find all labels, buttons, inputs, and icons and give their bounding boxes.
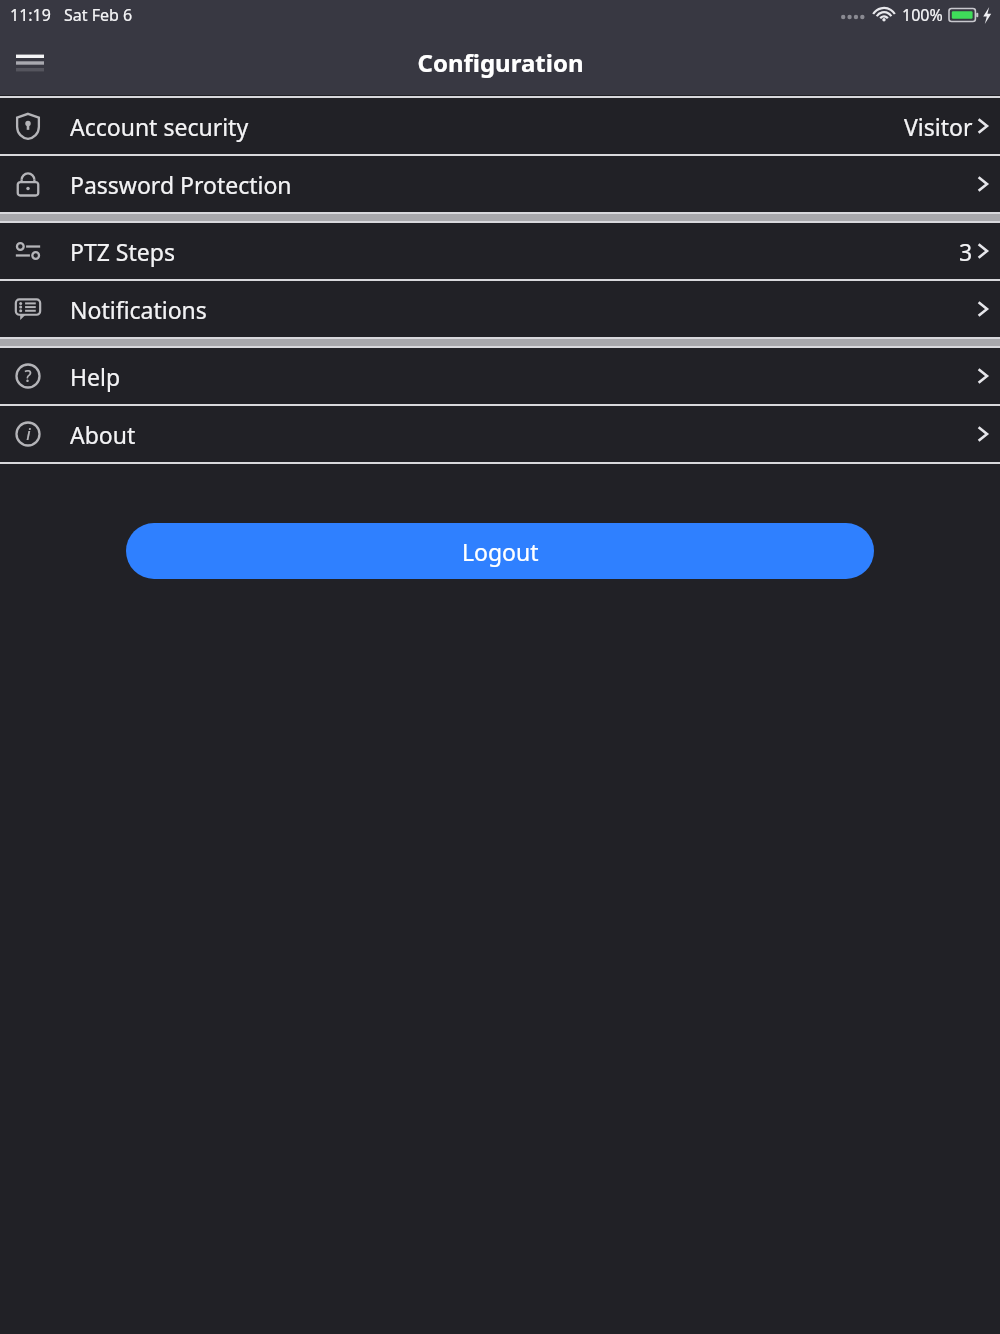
staticText: Configuration	[417, 46, 584, 79]
staticText: Visitor	[904, 111, 973, 142]
staticText: ?	[24, 365, 32, 387]
staticText: i	[26, 423, 31, 445]
button[interactable]: i	[0, 406, 1000, 462]
staticText: Help	[70, 361, 121, 392]
button[interactable]: Menu	[6, 39, 54, 87]
staticText: Notifications	[70, 294, 207, 325]
staticText: Logout	[462, 536, 539, 567]
button[interactable]: Notifications	[0, 281, 1000, 337]
button[interactable]: Logout	[126, 523, 874, 579]
staticText: 3	[959, 236, 973, 267]
staticText: Sat Feb 6	[64, 4, 133, 26]
staticText: Account security	[70, 111, 249, 142]
staticText: 11:19	[10, 4, 51, 26]
button[interactable]: ?	[0, 348, 1000, 404]
button[interactable]: Password Protection	[0, 156, 1000, 212]
staticText: About	[70, 419, 136, 450]
button[interactable]: PTZ Steps	[0, 223, 1000, 279]
staticText: 100%	[902, 4, 943, 26]
button[interactable]: Account security	[0, 98, 1000, 154]
staticText: PTZ Steps	[70, 236, 175, 267]
staticText: Password Protection	[70, 169, 292, 200]
